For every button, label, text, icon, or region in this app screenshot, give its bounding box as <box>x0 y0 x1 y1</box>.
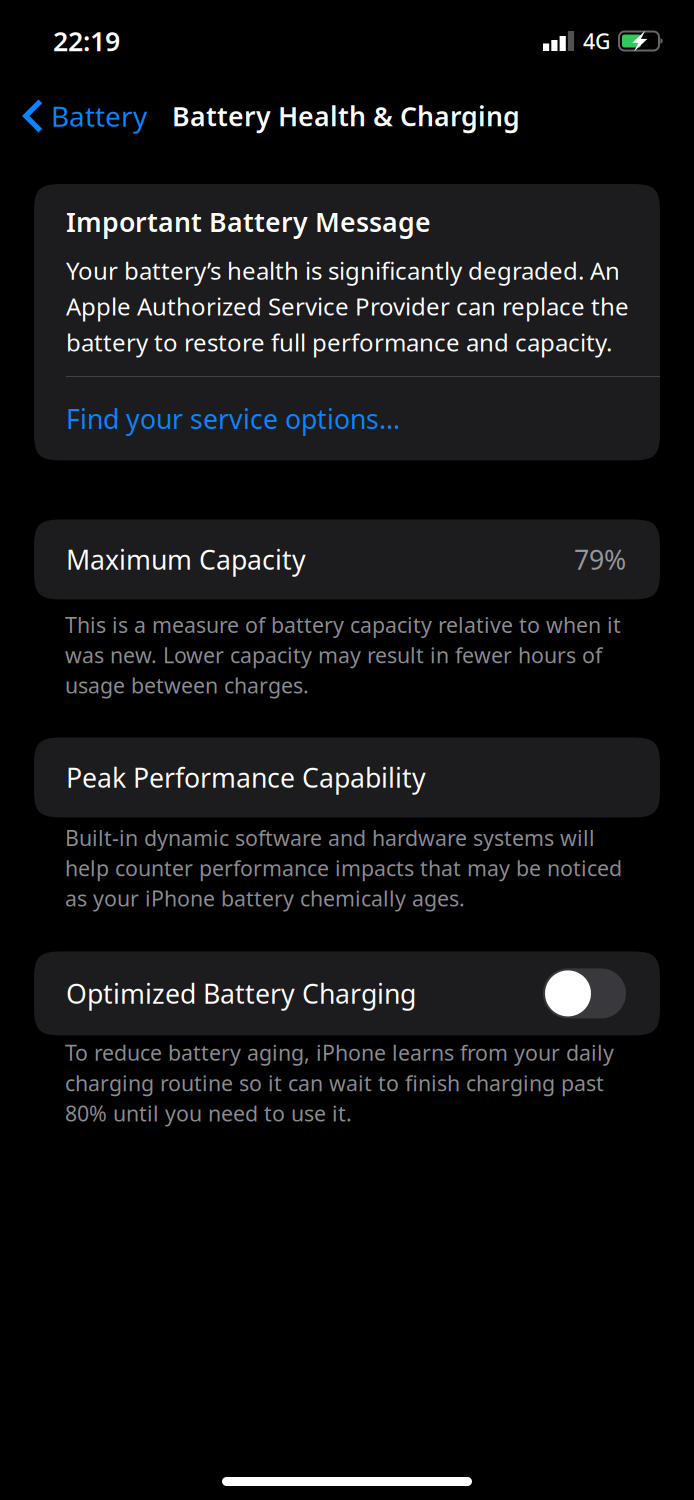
staticText: Maximum Capacity <box>66 542 306 577</box>
staticText: Built-in dynamic software and hardware s… <box>65 823 622 912</box>
staticText: Battery Health & Charging <box>172 98 520 134</box>
button[interactable]: Find your service options... <box>66 377 660 460</box>
staticText: 4G <box>583 27 611 55</box>
staticText: 22:19 <box>53 23 120 59</box>
button[interactable]: Peak Performance Capability <box>0 737 694 817</box>
staticText: Peak Performance Capability <box>66 760 426 795</box>
staticText: Optimized Battery Charging <box>66 976 416 1011</box>
button[interactable]: Optimized Battery Charging <box>543 968 626 1018</box>
staticText: Your battery’s health is significantly d… <box>66 254 629 358</box>
staticText: Find your service options... <box>66 401 400 436</box>
button[interactable]: Battery <box>0 89 155 143</box>
staticText: 79% <box>574 542 626 577</box>
staticText: This is a measure of battery capacity re… <box>65 610 621 699</box>
staticText: Important Battery Message <box>66 204 431 239</box>
staticText: To reduce battery aging, iPhone learns f… <box>65 1038 614 1127</box>
staticText: Battery <box>51 97 147 135</box>
